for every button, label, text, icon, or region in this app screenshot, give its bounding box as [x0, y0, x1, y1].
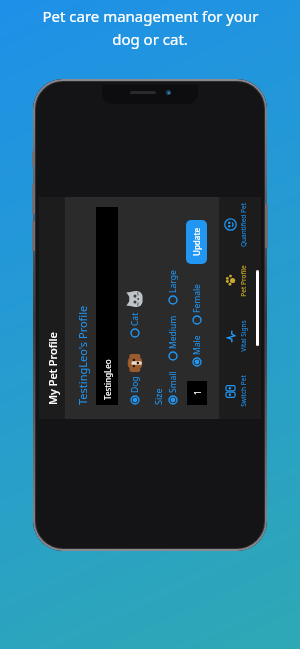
staticText: Large — [167, 270, 179, 293]
staticText: Cat — [129, 312, 141, 326]
button[interactable]: My Pet Profile — [39, 197, 65, 419]
staticText: Female — [191, 284, 203, 313]
staticText: Update — [191, 227, 202, 256]
button[interactable]: Large — [167, 270, 179, 305]
staticText: TestingLeo — [102, 359, 113, 400]
button[interactable]: Pet Profile — [219, 253, 253, 309]
staticText: Dog — [129, 376, 141, 393]
other: Switch Pet — [224, 385, 237, 398]
button[interactable]: TestingLeo — [96, 207, 118, 405]
other: Quantified Pet — [224, 218, 237, 231]
staticText: Pet Profile — [239, 265, 248, 297]
other: Dog — [126, 354, 144, 372]
button[interactable]: Switch Pet — [219, 364, 253, 419]
button[interactable]: Cat — [129, 312, 141, 338]
button[interactable]: Vital Signs — [219, 309, 253, 364]
staticText: Size — [152, 388, 164, 405]
staticText: Medium — [167, 315, 179, 349]
button[interactable]: Dog — [129, 376, 141, 405]
button[interactable]: Female — [191, 284, 203, 325]
staticText: Quantified Pet — [239, 203, 248, 247]
staticText: 1 — [192, 390, 203, 395]
staticText: TestingLeo's Profile — [75, 305, 90, 405]
button[interactable]: Medium — [167, 315, 179, 361]
button[interactable]: Quantified Pet — [219, 197, 253, 253]
button[interactable]: Update — [186, 220, 207, 264]
staticText: Male — [191, 335, 203, 355]
other: Pet Profile — [224, 274, 237, 287]
button[interactable]: 1 — [187, 381, 207, 405]
button[interactable]: Male — [191, 335, 203, 367]
staticText: dog or cat. — [112, 29, 188, 49]
other: Cat — [126, 290, 144, 308]
staticText: Vital Signs — [239, 320, 248, 352]
button[interactable]: Small — [167, 371, 179, 405]
staticText: Pet care management for your — [42, 6, 259, 26]
staticText: Small — [167, 371, 179, 393]
staticText: Switch Pet — [239, 375, 248, 407]
other: Vital Signs — [224, 330, 237, 343]
staticText: My Pet Profile — [45, 332, 60, 405]
